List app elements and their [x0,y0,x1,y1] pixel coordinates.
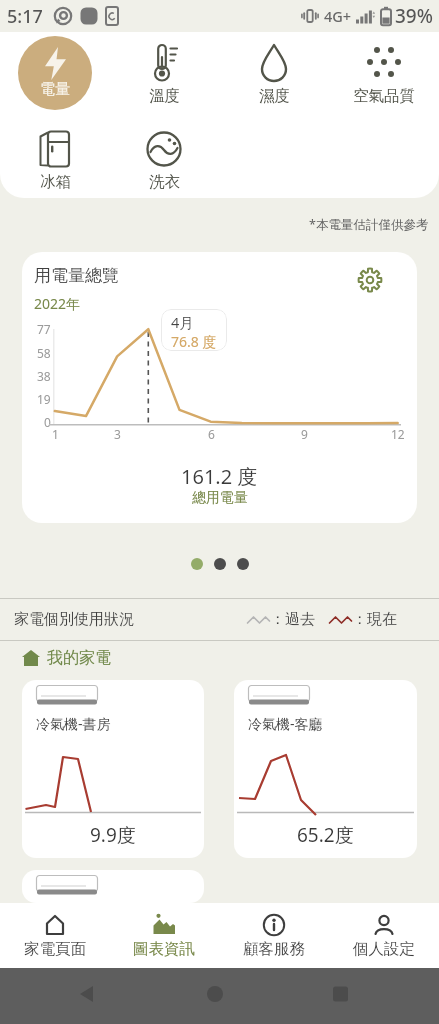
staticText: 1 [52,426,59,442]
staticText: 冷氣機-書房 [36,714,111,733]
staticText: 12 [391,426,405,442]
staticText: ：過去 [270,610,315,629]
staticText: 38 [37,368,51,384]
staticText: 圖表資訊 [133,939,195,959]
button[interactable]: 冷氣機-書房 [22,680,204,858]
staticText: 6 [208,426,215,442]
staticText: 58 [37,345,51,361]
staticText: 19 [37,391,51,407]
staticText: 0 [44,414,51,430]
staticText: 77 [37,321,51,337]
button[interactable]: 溫度 [144,42,184,106]
button[interactable]: 顧客服務 [219,903,329,968]
staticText: 顧客服務 [243,939,305,959]
staticText: 3 [114,426,121,442]
button[interactable]: 電量 [18,36,92,110]
button[interactable]: 空氣品質 [353,42,415,106]
staticText: 9 [301,426,308,442]
staticText: 溫度 [149,86,180,106]
button[interactable]: 圖表資訊 [109,903,219,968]
button[interactable]: 個人設定 [329,903,439,968]
staticText: 161.2 度 [181,463,258,490]
staticText: *本電量估計僅供參考 [309,216,429,233]
staticText: 濕度 [259,86,290,106]
staticText: 65.2度 [297,822,354,848]
staticText: 冰箱 [40,172,71,192]
button[interactable] [356,266,384,294]
staticText: 2022年 [34,294,81,313]
staticText: 個人設定 [353,939,415,959]
staticText: ：現在 [352,610,397,629]
staticText: 空氣品質 [353,86,415,106]
staticText: 39% [395,3,433,29]
button[interactable]: 冰箱 [35,128,75,192]
staticText: 家電頁面 [24,939,86,959]
staticText: 5:17 [7,4,43,29]
staticText: 家電個別使用狀況 [14,610,134,629]
staticText: 9.9度 [90,822,136,848]
button[interactable]: 冷氣機-主臥室 [22,870,204,903]
staticText: 總用電量 [192,489,248,507]
staticText: 4G+ [324,6,352,26]
staticText: 電量 [40,80,70,99]
button[interactable]: 冷氣機-客廳 [234,680,417,858]
button[interactable]: 家電頁面 [0,903,109,968]
staticText: 用電量總覽 [34,265,119,286]
staticText: 4月 [171,312,194,332]
staticText: 我的家電 [47,648,111,668]
staticText: 冷氣機-客廳 [248,714,323,733]
staticText: 76.8 度 [171,332,217,351]
button[interactable]: 濕度 [254,42,294,106]
button[interactable]: 洗衣 [144,128,184,192]
staticText: 洗衣 [149,172,180,192]
